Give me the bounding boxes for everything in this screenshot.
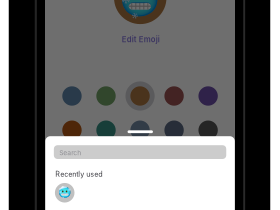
button[interactable] (62, 120, 82, 140)
button[interactable] (96, 86, 116, 106)
button[interactable] (130, 120, 150, 140)
button[interactable]: Edit Emoji (122, 35, 160, 44)
button[interactable] (130, 86, 150, 106)
staticText: 🥶 (58, 186, 71, 199)
button[interactable] (198, 86, 218, 106)
button[interactable] (164, 86, 184, 106)
button[interactable] (164, 120, 184, 140)
staticText: Search (59, 149, 81, 157)
staticText: 🥶 (119, 0, 161, 19)
staticText: Edit Emoji (122, 35, 160, 44)
button[interactable] (198, 120, 218, 140)
button[interactable] (62, 86, 82, 106)
button[interactable]: 🥶 (55, 183, 74, 202)
button[interactable] (96, 120, 116, 140)
staticText: Recently used (55, 170, 102, 178)
